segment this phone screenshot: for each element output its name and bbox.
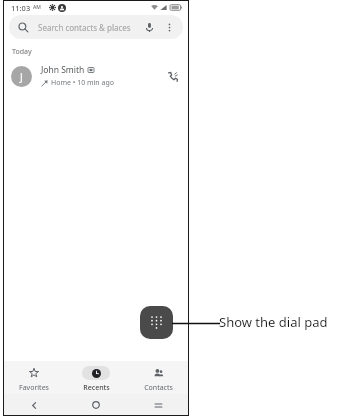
button[interactable]: Recents — [65, 363, 127, 393]
staticText: John Smith — [41, 64, 85, 76]
button[interactable]: Call John Smith — [161, 65, 183, 87]
button[interactable]: Favorites — [3, 363, 65, 393]
button[interactable]: Search contacts & places — [9, 15, 183, 39]
staticText: Favorites — [19, 383, 49, 393]
button[interactable]: Contacts — [127, 363, 189, 393]
staticText: 11:03 — [11, 3, 31, 13]
staticText: AM — [33, 4, 41, 11]
staticText: Contacts — [144, 383, 173, 393]
button[interactable]: Home — [65, 394, 127, 416]
button[interactable]: Voice search — [139, 17, 159, 37]
staticText: Search contacts & places — [38, 22, 131, 33]
staticText: Recents — [83, 383, 110, 393]
staticText: Today — [12, 47, 32, 57]
button[interactable]: Back — [3, 394, 65, 416]
staticText: Show the dial pad — [219, 313, 328, 331]
button[interactable]: More options — [159, 17, 179, 37]
button[interactable]: J — [3, 59, 189, 93]
button[interactable]: Recent apps — [127, 394, 189, 416]
staticText: Home • 10 min ago — [51, 78, 114, 88]
button[interactable]: Show the dial pad — [140, 306, 173, 339]
staticText: J — [20, 70, 23, 84]
